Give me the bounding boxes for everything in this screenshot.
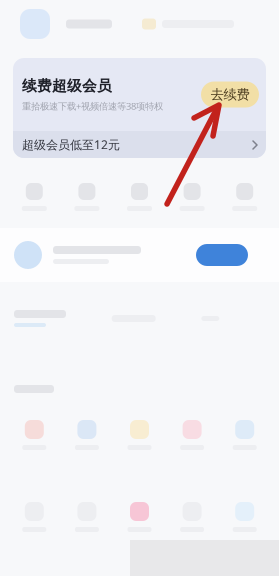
button[interactable]: Shortcut: [61, 502, 113, 532]
button[interactable]: Shortcut: [113, 420, 166, 450]
staticText: 重拾极速下载+视频倍速等38项特权: [22, 100, 163, 112]
button[interactable]: Shortcut: [166, 420, 218, 450]
button[interactable]: Shortcut: [8, 502, 61, 532]
button[interactable]: Shortcut: [218, 502, 271, 532]
staticText: 超级会员低至12元: [22, 136, 120, 152]
button[interactable]: Shortcut: [166, 183, 218, 211]
button[interactable]: 去续费: [201, 81, 259, 107]
button[interactable]: Open: [196, 244, 248, 266]
staticText: 去续费: [210, 86, 249, 103]
button[interactable]: Shortcut: [218, 420, 271, 450]
button[interactable]: Shortcut: [61, 183, 113, 211]
button[interactable]: Shortcut: [8, 420, 61, 450]
button[interactable]: Shortcut: [113, 502, 166, 532]
button[interactable]: Shortcut: [8, 183, 61, 211]
button[interactable]: Shortcut: [61, 420, 113, 450]
button[interactable]: Shortcut: [166, 502, 218, 532]
staticText: 续费超级会员: [22, 77, 112, 95]
button[interactable]: 超级会员低至12元: [13, 131, 266, 158]
button[interactable]: Shortcut: [113, 183, 166, 211]
button[interactable]: Shortcut: [218, 183, 271, 211]
